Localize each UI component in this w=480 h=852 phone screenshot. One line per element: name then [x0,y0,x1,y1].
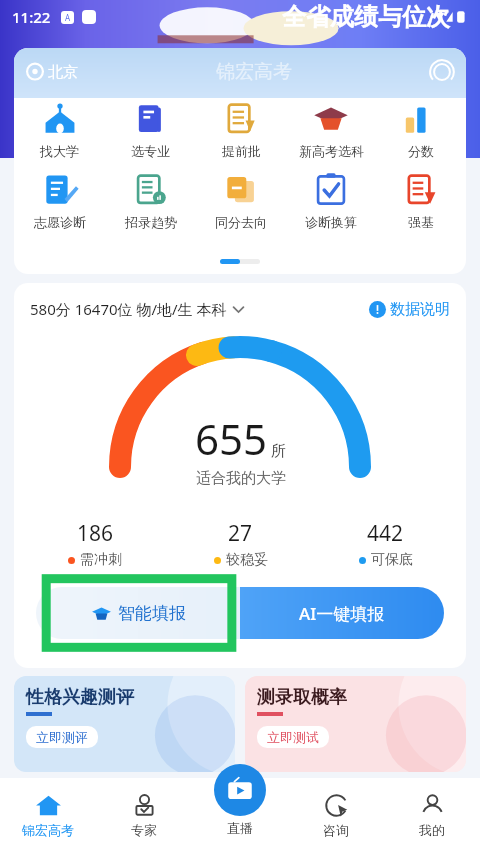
staticText: A [65,12,71,23]
button[interactable]: 分数 [376,100,466,159]
staticText: 选专业 [131,143,170,159]
staticText: 我的 [419,822,445,838]
button[interactable]: 测录取概率 [245,676,466,772]
staticText: 适合我的大学 [196,469,286,488]
button[interactable]: 招录趋势 [105,171,196,230]
button[interactable]: Customer service [430,60,454,84]
staticText: 655 [195,410,268,467]
staticText: 186 [77,519,114,548]
button[interactable]: 锦宏高考 [0,778,96,852]
staticText: 强基 [408,214,434,230]
staticText: AI一键填报 [299,602,385,625]
button[interactable]: AI一键填报 [240,587,444,639]
staticText: 数据说明 [390,300,450,319]
staticText: 27 [228,519,253,548]
button[interactable]: 提前批 [196,100,286,159]
button[interactable]: 找大学 [14,100,105,159]
staticText: 442 [367,519,404,548]
button[interactable]: 我的 [384,778,480,852]
staticText: 11:22 [12,7,51,27]
staticText: 志愿诊断 [34,214,86,230]
staticText: 找大学 [40,143,79,159]
staticText: 较稳妥 [226,551,268,569]
staticText: 诊断换算 [305,214,357,230]
button[interactable]: 强基 [376,171,466,230]
staticText: 新高考选科 [299,143,364,159]
staticText: 测录取概率 [257,686,347,709]
staticText: 同分去向 [215,214,267,230]
staticText: 580分 16470位 物/地/生 本科 [30,299,227,319]
button[interactable]: 数据说明 [369,300,450,319]
button[interactable]: 580分 16470位 物/地/生 本科 [30,299,245,319]
staticText: 需冲刺 [80,551,122,569]
staticText: 立即测评 [36,729,88,745]
staticText: 直播 [227,820,253,836]
button[interactable]: 同分去向 [196,171,286,230]
button[interactable]: 专家 [96,778,192,852]
button[interactable]: 性格兴趣测评 [14,676,235,772]
button[interactable]: 咨询 [288,778,384,852]
staticText: 全省成绩与位次 [282,2,450,32]
staticText: 分数 [408,143,434,159]
staticText: 立即测试 [267,729,319,745]
button[interactable]: Live [214,764,266,816]
staticText: 可保底 [371,551,413,569]
staticText: 提前批 [222,143,261,159]
staticText: 性格兴趣测评 [26,686,134,709]
button[interactable]: 北京 [26,63,78,82]
staticText: 所 [271,442,286,461]
staticText: 锦宏高考 [216,60,292,84]
staticText: 锦宏高考 [22,822,74,838]
staticText: 招录趋势 [125,214,177,230]
button[interactable]: 诊断换算 [286,171,376,230]
staticText: 智能填报 [118,603,186,624]
button[interactable]: 选专业 [105,100,196,159]
button[interactable]: 志愿诊断 [14,171,105,230]
button[interactable]: 新高考选科 [286,100,376,159]
staticText: 专家 [131,822,157,838]
staticText: 北京 [48,63,78,82]
button[interactable]: 智能填报 [36,587,240,639]
staticText: 咨询 [323,822,349,838]
